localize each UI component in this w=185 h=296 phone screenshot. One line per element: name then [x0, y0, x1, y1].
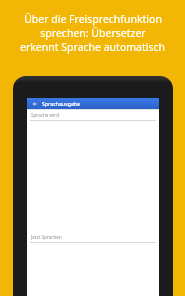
staticText: erkennt Sprache automatisch [20, 40, 165, 54]
button[interactable]: Jetzt Sprechen [27, 232, 159, 242]
staticText: sprechen: Übersetzer [40, 26, 146, 40]
staticText: Sprachausgabe [42, 100, 81, 107]
staticText: Sprache wird [31, 112, 59, 118]
button[interactable]: Zurück [27, 98, 159, 109]
staticText: Über die Freisprechfunktion [24, 12, 162, 26]
staticText: Jetzt Sprechen [31, 234, 62, 240]
button[interactable]: Zurück [31, 100, 38, 107]
button[interactable]: Sprache wird [27, 110, 159, 120]
